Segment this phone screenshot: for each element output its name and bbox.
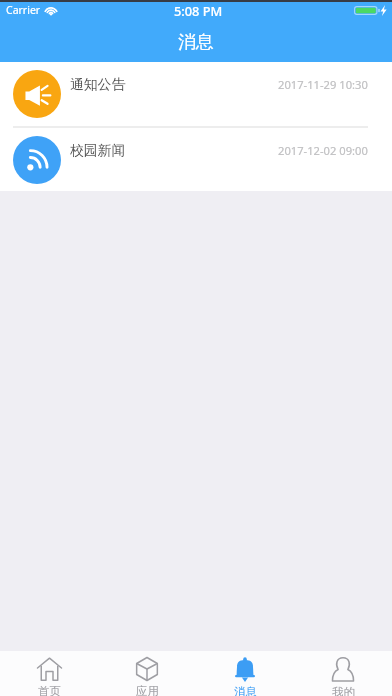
staticText: 应用 xyxy=(136,684,159,696)
staticText: 2017-12-02 09:00 xyxy=(278,143,368,158)
staticText: 校园新闻 xyxy=(70,142,126,159)
button[interactable]: 首页 xyxy=(0,651,98,696)
staticText: 通知公告 xyxy=(70,76,126,93)
button[interactable]: 通知公告 xyxy=(0,62,392,126)
staticText: 消息 xyxy=(178,31,214,54)
staticText: 2017-11-29 10:30 xyxy=(278,77,368,92)
staticText: 我的 xyxy=(332,685,355,696)
staticText: Carrier xyxy=(6,3,41,17)
button[interactable]: 消息 xyxy=(196,651,294,696)
button[interactable]: 校园新闻 xyxy=(0,128,392,191)
staticText: 首页 xyxy=(38,684,61,696)
staticText: 消息 xyxy=(234,685,257,696)
button[interactable]: 我的 xyxy=(294,651,392,696)
staticText: 5:08 PM xyxy=(174,2,223,19)
button[interactable]: 应用 xyxy=(98,651,196,696)
